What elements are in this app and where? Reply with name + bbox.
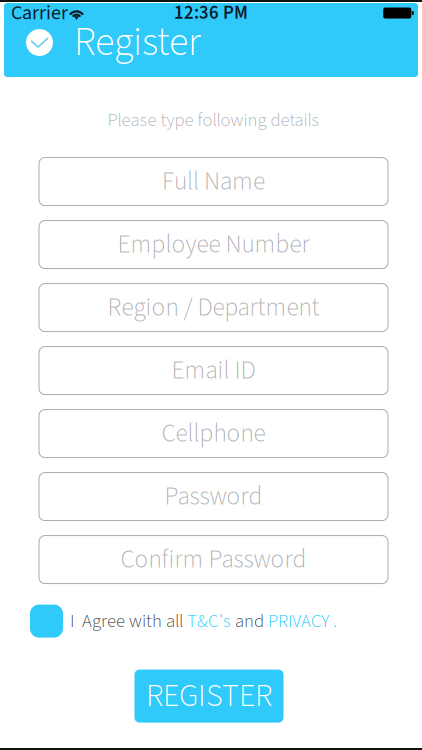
staticText: PRIVACY . — [268, 608, 337, 634]
staticText: Confirm Password — [120, 541, 306, 578]
button[interactable]: T&C's — [187, 608, 231, 634]
staticText: Carrier — [11, 0, 68, 27]
button[interactable]: REGISTER — [134, 670, 283, 723]
button[interactable]: PRIVACY . — [268, 608, 337, 634]
button[interactable]: Back — [26, 29, 53, 56]
staticText: Region / Department — [107, 289, 319, 326]
staticText: Cellphone — [161, 415, 265, 452]
staticText: Password — [164, 478, 262, 515]
staticText: T&C's — [187, 608, 231, 634]
staticText: Please type following details — [107, 107, 319, 134]
button[interactable]: I agree with all terms and conditions — [30, 605, 63, 638]
staticText: Email ID — [171, 352, 255, 389]
staticText: I Agree with all — [70, 608, 187, 634]
staticText: REGISTER — [146, 673, 272, 719]
staticText: 12:36 PM — [174, 0, 248, 26]
staticText: Register — [74, 14, 201, 71]
staticText: Employee Number — [117, 226, 309, 263]
staticText: Full Name — [162, 163, 265, 200]
staticText: and — [231, 608, 268, 634]
